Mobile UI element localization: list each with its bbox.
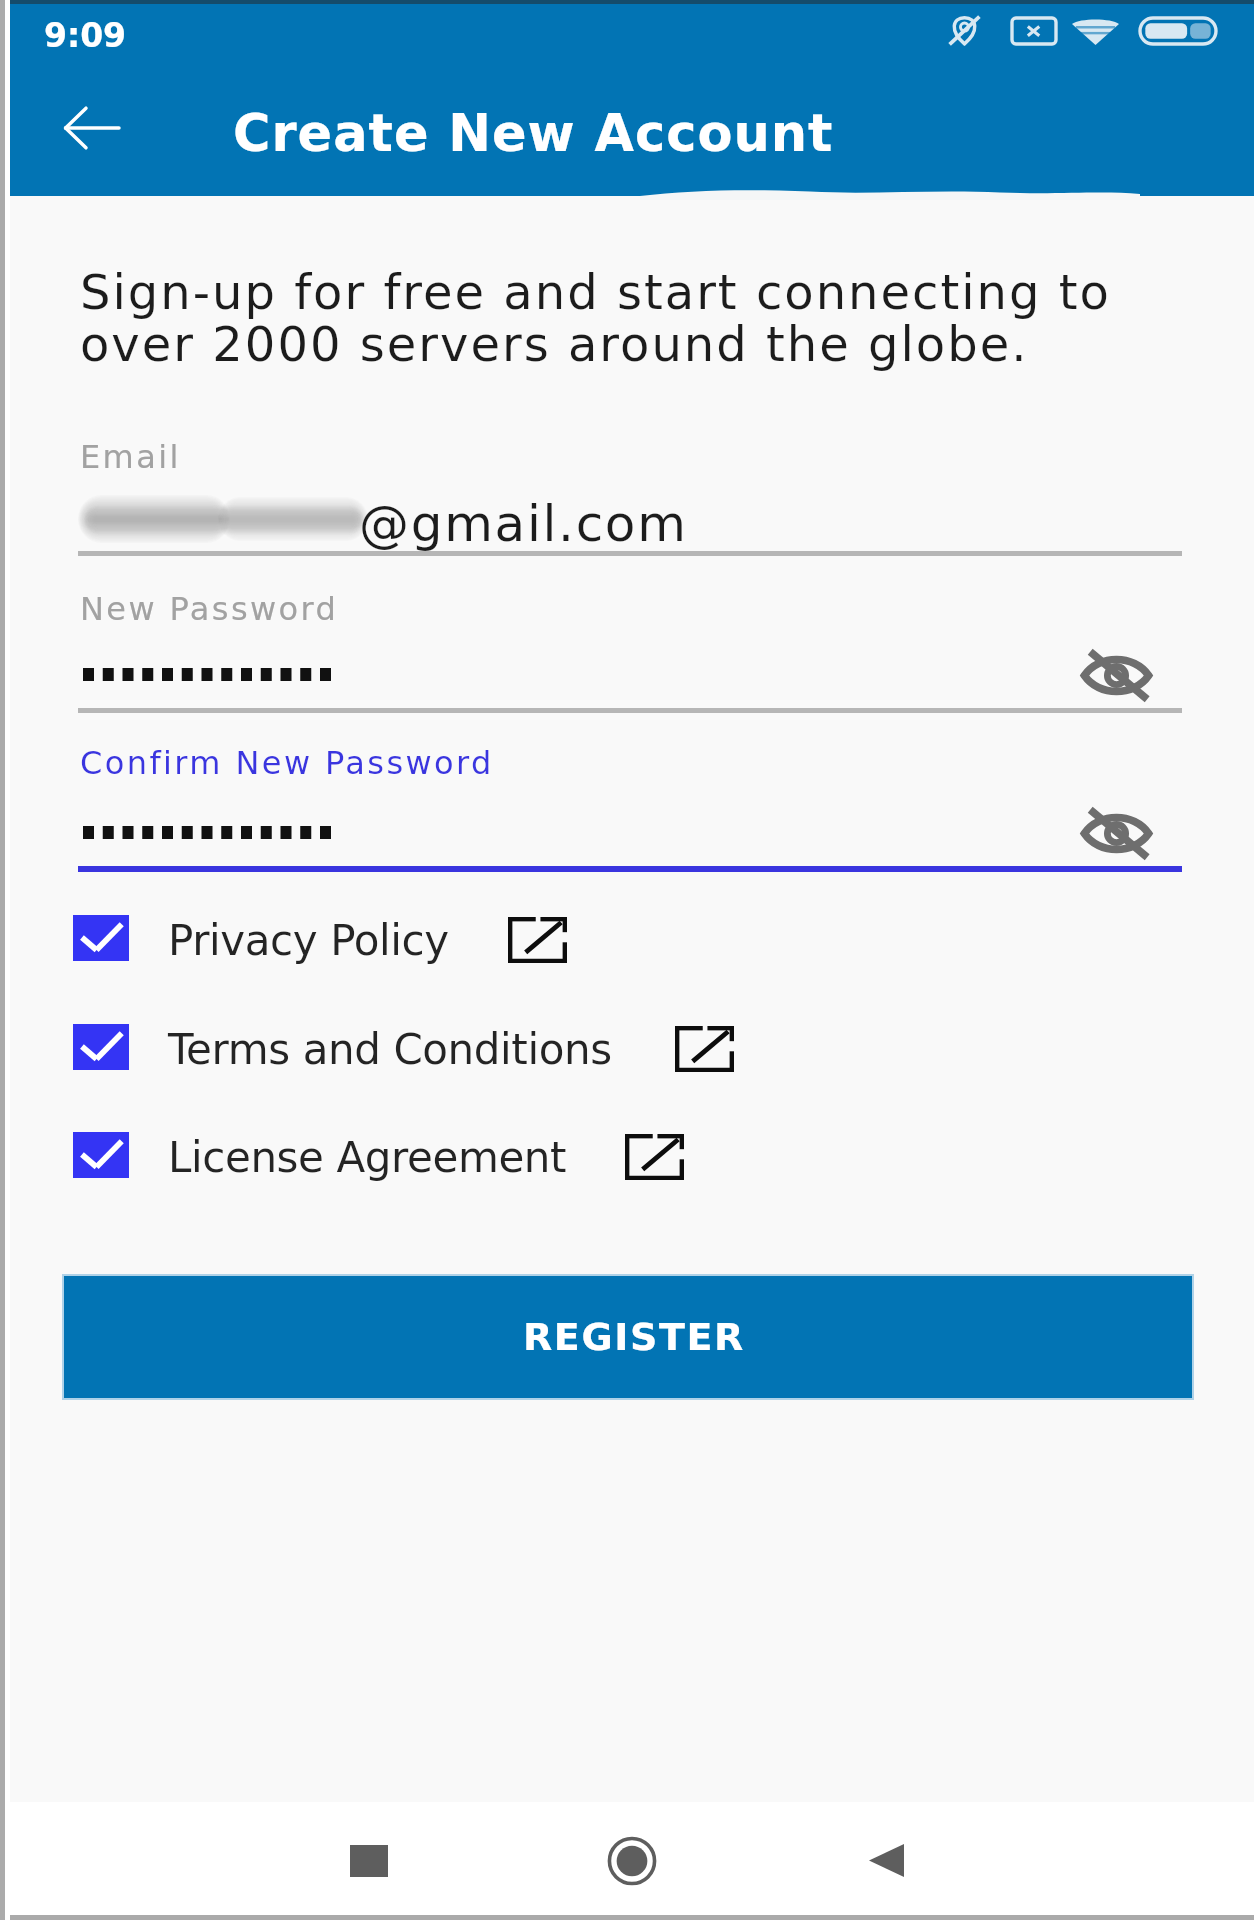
button[interactable]: Back: [826, 1804, 946, 1917]
staticText: Confirm New Password: [80, 744, 494, 781]
button[interactable]: Open License Agreement: [622, 1131, 686, 1183]
button[interactable]: Show password: [1064, 799, 1168, 867]
button[interactable]: Show password: [1064, 641, 1168, 709]
button[interactable]: Open Privacy Policy: [505, 914, 569, 966]
button[interactable]: Open Terms and Conditions: [672, 1023, 736, 1075]
staticText: @gmail.com: [359, 495, 688, 553]
staticText: Email: [80, 438, 181, 475]
button[interactable]: REGISTER: [64, 1276, 1192, 1398]
staticText: Privacy Policy: [168, 916, 449, 965]
button[interactable]: Terms and Conditions: [40, 1000, 652, 1094]
button[interactable]: Home: [572, 1804, 692, 1917]
button[interactable]: Back: [54, 90, 130, 166]
staticText: Sign-up for free and start connecting to…: [80, 264, 1111, 373]
button[interactable]: License Agreement: [40, 1108, 602, 1202]
staticText: Terms and Conditions: [168, 1025, 612, 1074]
staticText: REGISTER: [523, 1315, 745, 1359]
staticText: Create New Account: [233, 104, 834, 163]
staticText: 9:09: [44, 16, 127, 54]
button[interactable]: Recents: [309, 1804, 429, 1917]
button[interactable]: Privacy Policy: [40, 891, 485, 985]
staticText: License Agreement: [168, 1133, 567, 1182]
staticText: New Password: [80, 590, 339, 627]
